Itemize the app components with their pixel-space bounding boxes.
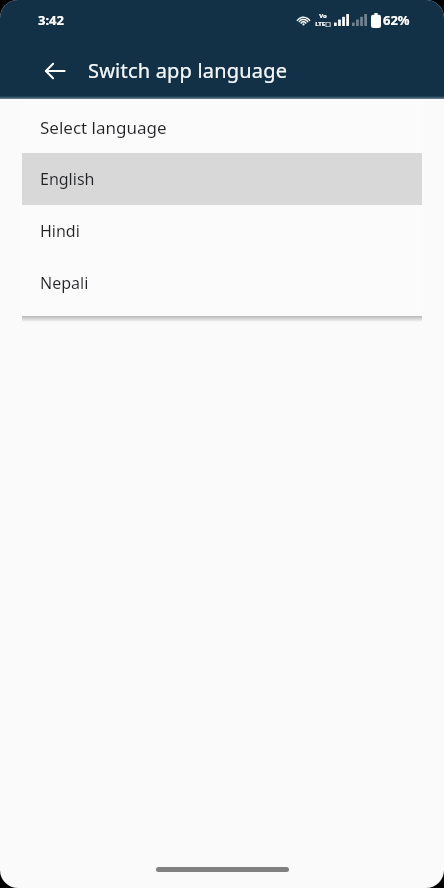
staticText: Switch app language — [88, 57, 288, 84]
staticText: Vo — [319, 12, 327, 20]
button[interactable]: Nepali — [22, 257, 422, 309]
staticText: Hindi — [40, 220, 80, 242]
staticText: 3:42 — [38, 11, 64, 29]
staticText: 62% — [383, 11, 410, 29]
staticText: LTE□ — [315, 20, 331, 28]
button[interactable]: Back — [32, 48, 78, 94]
staticText: Nepali — [40, 272, 89, 294]
staticText: English — [40, 168, 95, 190]
button[interactable]: English — [22, 153, 422, 205]
button[interactable]: Hindi — [22, 205, 422, 257]
staticText: Select language — [40, 116, 167, 139]
